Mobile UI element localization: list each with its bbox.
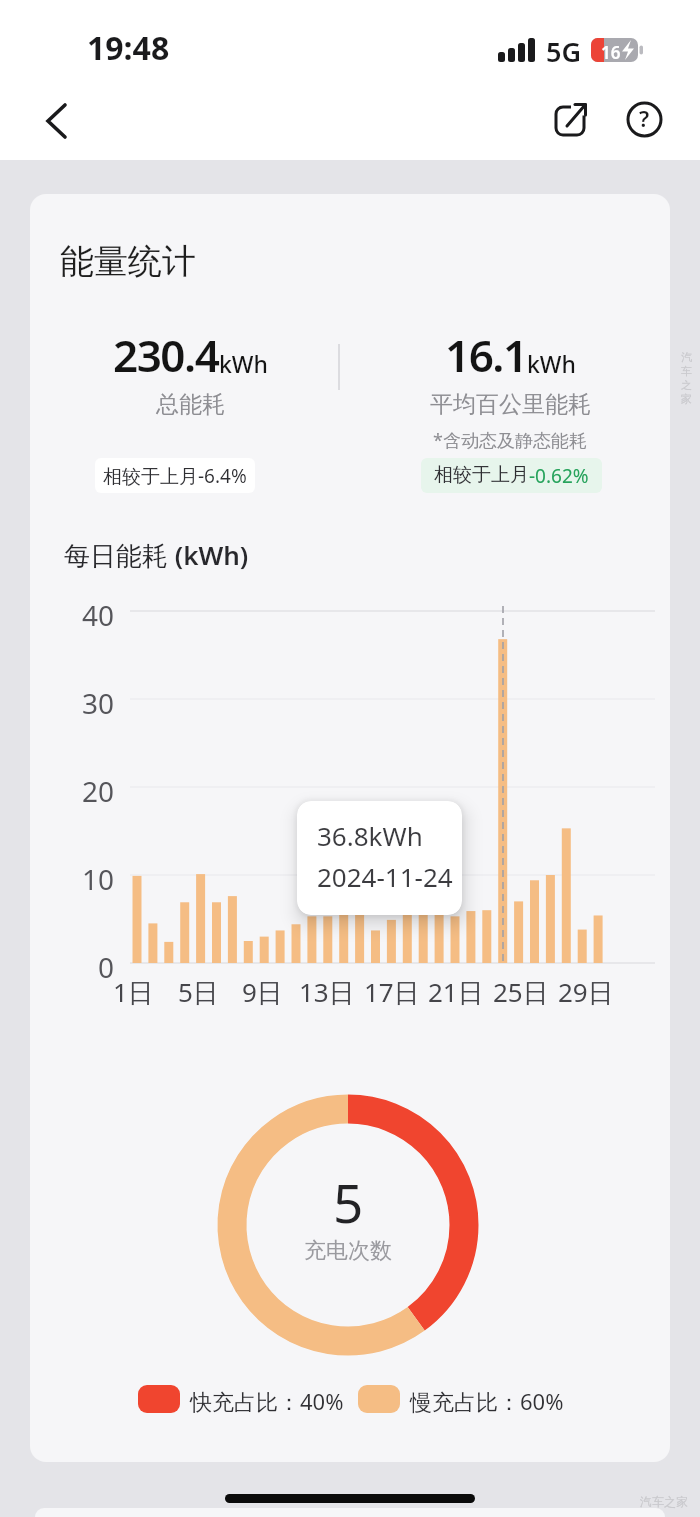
staticText: 19:48: [87, 26, 170, 70]
staticText: 30: [82, 684, 115, 722]
button[interactable]: [548, 97, 594, 141]
staticText: 9日: [242, 974, 283, 1010]
staticText: 家: [681, 392, 692, 406]
staticText: 1日: [113, 974, 154, 1010]
staticText: 总能耗: [156, 390, 225, 419]
staticText: 之: [681, 378, 692, 392]
staticText: 5日: [178, 974, 219, 1010]
staticText: 5: [333, 1166, 364, 1238]
staticText: 车: [681, 364, 692, 378]
staticText: 25日: [493, 974, 549, 1010]
staticText: 汽: [681, 350, 692, 364]
staticText: 每日能耗 (kWh): [64, 537, 249, 573]
staticText: 13日: [299, 974, 355, 1010]
staticText: 相较于上月-6.4%: [103, 463, 247, 489]
staticText: kWh: [527, 348, 576, 379]
staticText: 40: [82, 596, 115, 634]
staticText: 平均百公里能耗: [430, 390, 591, 419]
staticText: ?: [639, 103, 650, 133]
button[interactable]: [36, 94, 84, 144]
staticText: -0.62%: [529, 463, 589, 489]
staticText: 相较于上月: [434, 463, 529, 487]
staticText: 10: [82, 860, 115, 898]
staticText: 36.8kWh: [317, 818, 423, 853]
staticText: 29日: [558, 974, 614, 1010]
staticText: 21日: [428, 974, 484, 1010]
staticText: kWh: [219, 348, 268, 379]
staticText: 0: [98, 948, 115, 986]
staticText: 快充占比：40%: [190, 1386, 344, 1416]
staticText: 20: [82, 772, 115, 810]
staticText: 2024-11-24: [317, 859, 453, 894]
staticText: 汽车之家: [640, 1494, 688, 1509]
staticText: 230.4: [113, 325, 219, 385]
staticText: 17日: [364, 974, 420, 1010]
staticText: 充电次数: [304, 1237, 392, 1265]
staticText: 慢充占比：60%: [410, 1386, 564, 1416]
staticText: 5G: [546, 33, 582, 70]
staticText: 能量统计: [60, 240, 196, 283]
staticText: 16.1: [445, 325, 527, 385]
staticText: 16: [601, 41, 621, 64]
staticText: *含动态及静态能耗: [433, 428, 587, 453]
button[interactable]: ?: [622, 97, 666, 141]
